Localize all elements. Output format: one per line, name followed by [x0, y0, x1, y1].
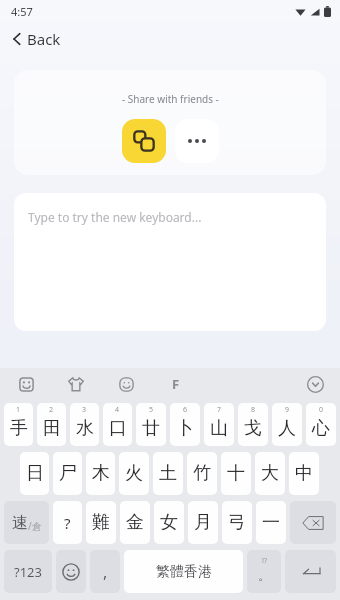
- staticText: 竹: [193, 462, 211, 485]
- button[interactable]: Themes: [66, 374, 86, 394]
- staticText: 0: [319, 405, 324, 415]
- button[interactable]: 一: [256, 501, 286, 544]
- button[interactable]: ?: [53, 501, 82, 544]
- staticText: 心: [312, 417, 330, 440]
- button[interactable]: ?123: [4, 550, 52, 593]
- button[interactable]: 7: [204, 403, 234, 446]
- staticText: 1: [16, 405, 21, 415]
- other: Emoji: [56, 550, 86, 593]
- staticText: 手: [10, 417, 28, 440]
- button[interactable]: 1: [4, 403, 33, 446]
- staticText: 弓: [228, 511, 246, 534]
- staticText: ,: [103, 561, 108, 583]
- button[interactable]: !?: [247, 550, 281, 593]
- staticText: 中: [295, 462, 313, 485]
- staticText: 9: [285, 405, 290, 415]
- staticText: 卜: [176, 417, 194, 440]
- button[interactable]: More sharing options: [175, 119, 219, 163]
- button[interactable]: 木: [86, 452, 115, 495]
- staticText: 2: [49, 405, 54, 415]
- staticText: 戈: [244, 417, 262, 440]
- button[interactable]: 4: [103, 403, 132, 446]
- other: Enter: [285, 550, 336, 593]
- button[interactable]: 5: [136, 403, 166, 446]
- button[interactable]: 難: [86, 501, 116, 544]
- button[interactable]: 火: [119, 452, 149, 495]
- button[interactable]: 日: [20, 452, 49, 495]
- staticText: 速: [12, 513, 28, 533]
- button[interactable]: Type to try the new keyboard...: [14, 193, 326, 331]
- staticText: 繁體香港: [156, 563, 212, 581]
- staticText: 十: [227, 462, 245, 485]
- staticText: 田: [43, 417, 61, 440]
- button[interactable]: 3: [70, 403, 99, 446]
- staticText: 山: [210, 417, 228, 440]
- staticText: 難: [92, 511, 110, 534]
- button[interactable]: Fonts: [166, 374, 186, 394]
- staticText: - Share with friends -: [122, 92, 219, 106]
- staticText: ?: [64, 513, 71, 533]
- other: Backspace: [290, 501, 336, 544]
- button[interactable]: 繁體香港: [124, 550, 243, 593]
- staticText: 女: [160, 511, 178, 534]
- button[interactable]: 中: [289, 452, 319, 495]
- button[interactable]: 土: [153, 452, 183, 495]
- button[interactable]: Backspace: [290, 501, 336, 544]
- staticText: 7: [217, 405, 222, 415]
- button[interactable]: Back: [0, 22, 340, 56]
- staticText: 尸: [59, 462, 77, 485]
- staticText: 6: [183, 405, 188, 415]
- staticText: 一: [262, 511, 280, 534]
- staticText: 8: [251, 405, 256, 415]
- staticText: 口: [109, 417, 127, 440]
- staticText: 月: [194, 511, 212, 534]
- button[interactable]: 大: [255, 452, 285, 495]
- staticText: F: [172, 375, 180, 393]
- staticText: !?: [262, 556, 267, 566]
- staticText: 。: [258, 567, 271, 583]
- staticText: 人: [278, 417, 296, 440]
- button[interactable]: Stickers: [16, 374, 36, 394]
- button[interactable]: ,: [90, 550, 120, 593]
- button[interactable]: 0: [306, 403, 336, 446]
- button[interactable]: 竹: [187, 452, 217, 495]
- button[interactable]: 速: [4, 501, 49, 544]
- button[interactable]: 十: [221, 452, 251, 495]
- staticText: 水: [76, 417, 94, 440]
- staticText: 金: [126, 511, 144, 534]
- staticText: Back: [27, 29, 61, 49]
- button[interactable]: Emoji: [116, 374, 136, 394]
- staticText: 5: [149, 405, 154, 415]
- button[interactable]: 8: [238, 403, 268, 446]
- button[interactable]: 金: [120, 501, 150, 544]
- staticText: 廿: [142, 417, 160, 440]
- staticText: 4:57: [11, 4, 33, 19]
- staticText: Type to try the new keyboard...: [28, 209, 202, 225]
- staticText: 4: [115, 405, 120, 415]
- button[interactable]: 女: [154, 501, 184, 544]
- staticText: 火: [125, 462, 143, 485]
- staticText: 日: [26, 462, 44, 485]
- staticText: ?123: [14, 563, 42, 581]
- button[interactable]: Enter: [285, 550, 336, 593]
- button[interactable]: 月: [188, 501, 218, 544]
- staticText: 木: [92, 462, 110, 485]
- button[interactable]: 尸: [53, 452, 82, 495]
- staticText: 大: [261, 462, 279, 485]
- button[interactable]: 6: [170, 403, 200, 446]
- staticText: /倉: [28, 519, 42, 533]
- button[interactable]: 2: [37, 403, 66, 446]
- button[interactable]: 弓: [222, 501, 252, 544]
- button[interactable]: Collapse toolbar: [304, 373, 326, 395]
- staticText: 3: [82, 405, 87, 415]
- button[interactable]: 9: [272, 403, 302, 446]
- button[interactable]: Emoji: [56, 550, 86, 593]
- button[interactable]: Share link: [122, 119, 166, 163]
- staticText: 土: [159, 462, 177, 485]
